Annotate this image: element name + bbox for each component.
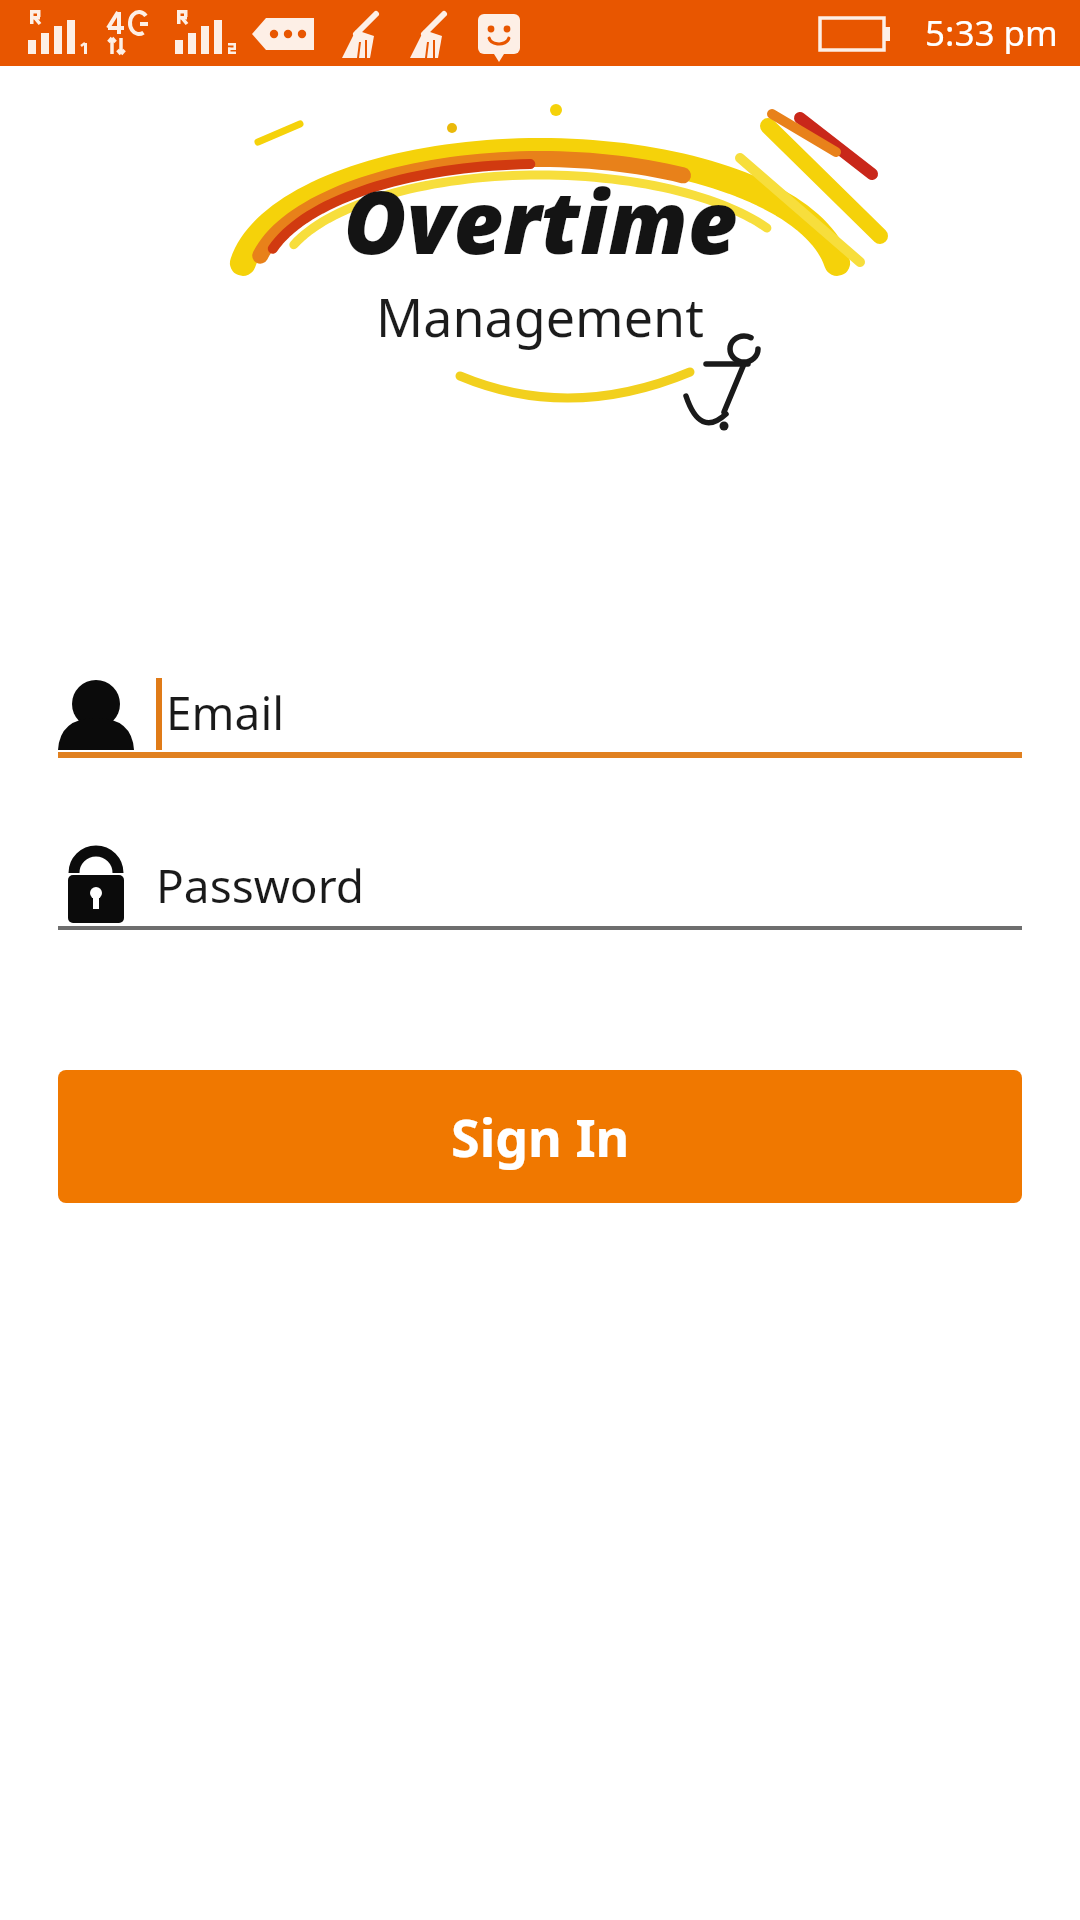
button[interactable]: Email xyxy=(0,666,1080,758)
staticText: 5:33 pm xyxy=(925,9,1058,57)
staticText: Management xyxy=(376,281,704,352)
staticText: Sign In xyxy=(451,1101,630,1172)
staticText: Email xyxy=(166,681,285,744)
button[interactable]: Sign In xyxy=(58,1070,1022,1203)
button[interactable]: Password xyxy=(0,839,1080,931)
staticText: Overtime xyxy=(343,162,738,279)
staticText: Password xyxy=(156,854,365,917)
